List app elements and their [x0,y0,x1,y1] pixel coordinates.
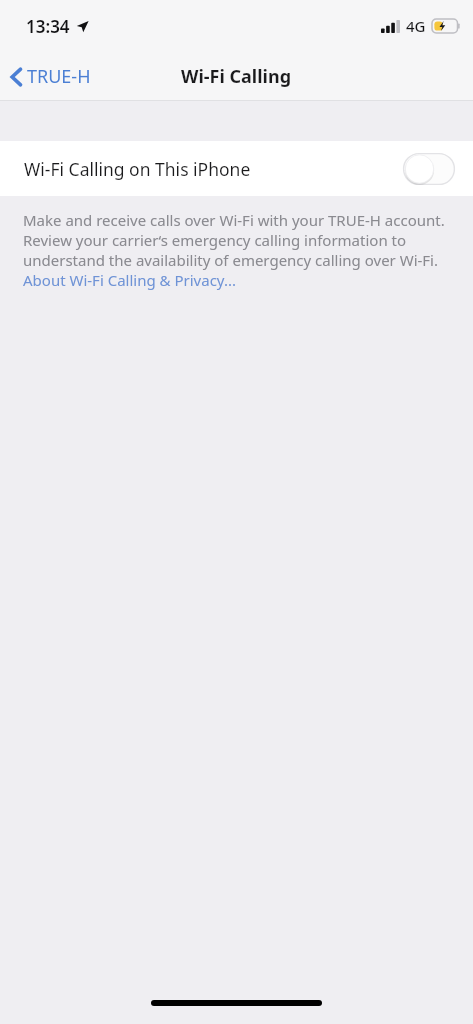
staticText: Wi-Fi Calling on This iPhone [24,157,251,181]
staticText: 13:34 [26,15,70,38]
staticText: 4G [406,16,426,36]
staticText: Wi-Fi Calling [181,64,292,89]
staticText: TRUE-H [27,64,91,89]
button[interactable]: About Wi-Fi Calling & Privacy... [23,270,236,290]
button[interactable]: Wi-Fi Calling on This iPhone [0,141,473,196]
button[interactable]: Wi-Fi Calling on This iPhone toggle, off [403,153,455,185]
staticText: Make and receive calls over Wi-Fi with y… [23,210,453,270]
button[interactable]: TRUE-H [0,58,105,95]
staticText: About Wi-Fi Calling & Privacy... [23,270,236,290]
